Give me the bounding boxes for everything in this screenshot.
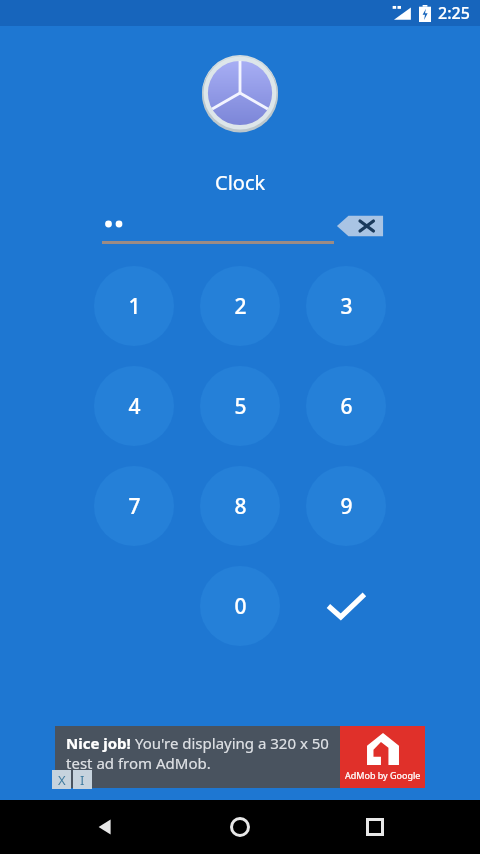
staticText: 7 (128, 492, 141, 521)
staticText: 3 (340, 292, 353, 321)
staticText: 5 (234, 392, 247, 421)
button[interactable]: 5 (200, 366, 280, 446)
button[interactable]: Nice job! (55, 726, 425, 788)
staticText: 0 (234, 592, 247, 621)
staticText: 2:25 (438, 2, 470, 24)
button[interactable]: 6 (306, 366, 386, 446)
button[interactable]: 7 (94, 466, 174, 546)
staticText: 2 (234, 292, 247, 321)
button[interactable]: 4 (94, 366, 174, 446)
button[interactable]: Confirm (293, 566, 399, 646)
button[interactable]: Backspace (336, 211, 384, 241)
staticText: 9 (340, 492, 353, 521)
staticText: 1 (128, 292, 141, 321)
staticText: Clock (215, 169, 266, 196)
button[interactable]: 9 (306, 466, 386, 546)
staticText: Nice job! (66, 733, 135, 753)
button[interactable]: 0 (200, 566, 280, 646)
button[interactable]: Back (83, 805, 127, 849)
button[interactable]: 1 (94, 266, 174, 346)
button[interactable]: Close ad (52, 770, 71, 789)
staticText: 8 (234, 492, 247, 521)
button[interactable]: Ad info (73, 770, 92, 789)
staticText: I (80, 771, 85, 789)
button[interactable]: 8 (200, 466, 280, 546)
staticText: X (58, 771, 66, 789)
staticText: AdMob by Google (345, 769, 421, 781)
button[interactable]: Recent apps (353, 805, 397, 849)
staticText: You're displaying a 320 x 50 (135, 733, 329, 753)
button[interactable]: Home (218, 805, 262, 849)
staticText: 6 (340, 392, 353, 421)
staticText: test ad from AdMob. (66, 753, 211, 773)
button[interactable]: 2 (200, 266, 280, 346)
staticText: 4 (128, 392, 141, 421)
button[interactable]: 3 (306, 266, 386, 346)
